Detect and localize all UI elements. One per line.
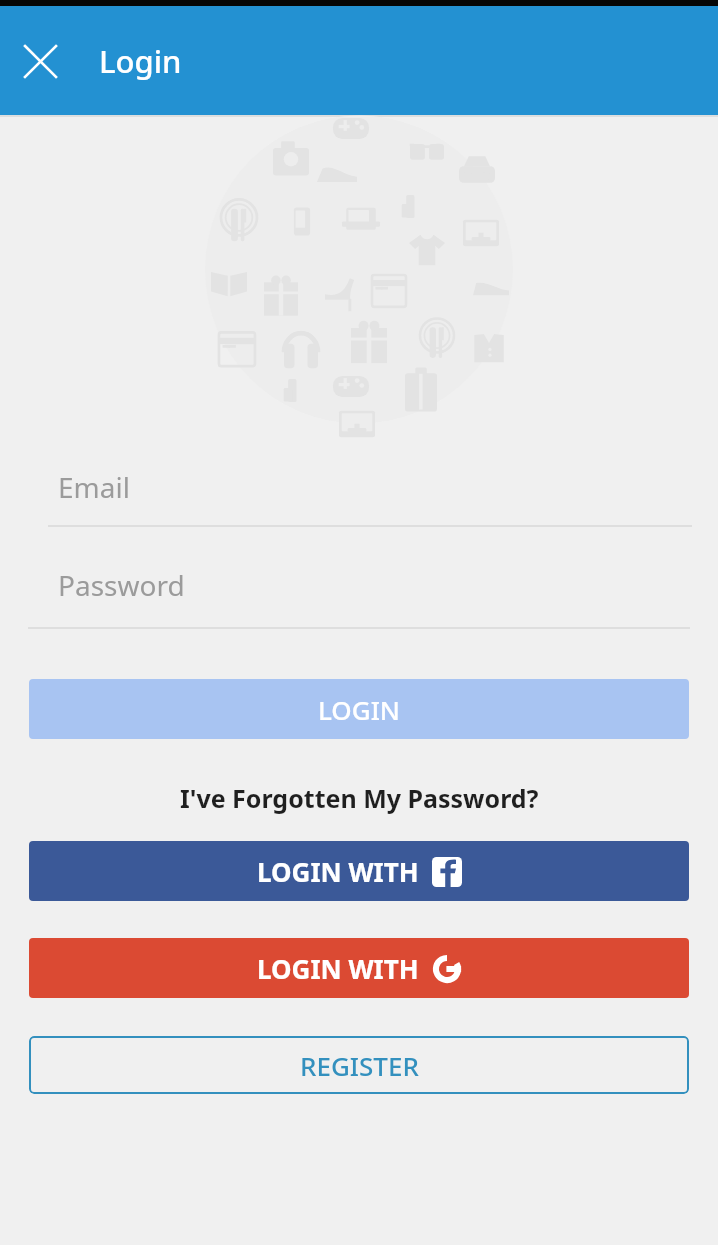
staticText: I've Forgotten My Password? (180, 781, 539, 815)
staticText: Password (58, 566, 185, 604)
button[interactable]: REGISTER (29, 1036, 689, 1094)
staticText: LOGIN (318, 692, 401, 727)
button[interactable]: Login with Facebook (29, 841, 689, 901)
button[interactable]: Password (0, 540, 718, 629)
button[interactable]: I've Forgotten My Password? (0, 776, 718, 820)
button[interactable]: LOGIN (29, 679, 689, 739)
staticText: LOGIN WITH (257, 951, 419, 986)
button[interactable]: Email (0, 447, 718, 527)
staticText: Email (58, 468, 130, 506)
staticText: REGISTER (300, 1048, 419, 1083)
staticText: LOGIN WITH (257, 854, 419, 889)
staticText: Login (99, 40, 182, 82)
button[interactable]: Login with Google (29, 938, 689, 998)
button[interactable]: Close (8, 29, 72, 93)
